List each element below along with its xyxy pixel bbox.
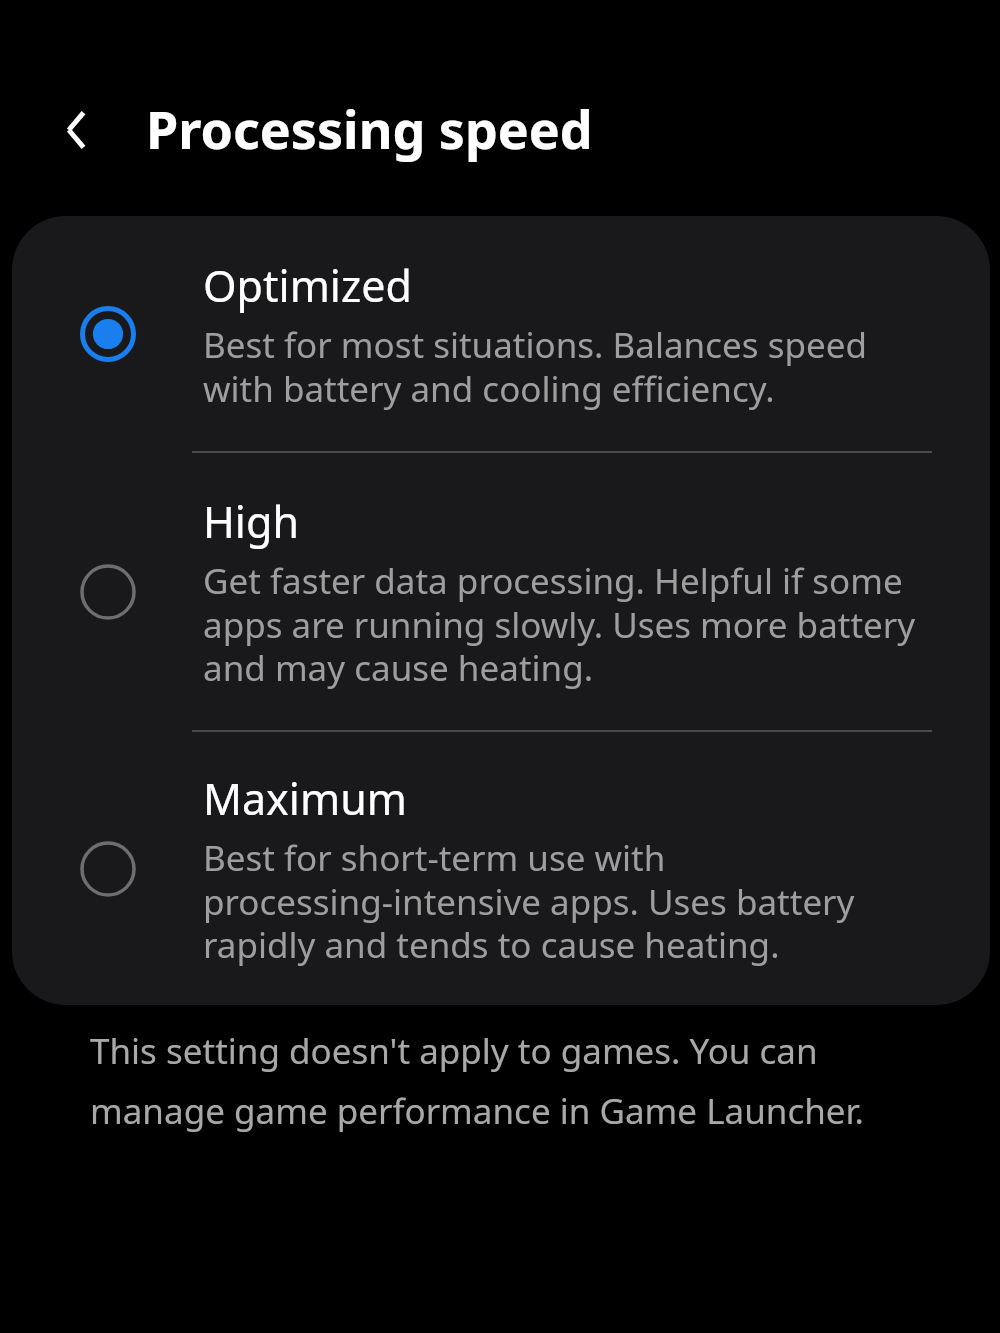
staticText: Processing speed — [146, 93, 593, 164]
button[interactable]: Back — [38, 90, 118, 170]
staticText: This setting doesn't apply to games. You… — [90, 1027, 864, 1134]
button[interactable]: Optimized — [12, 216, 990, 451]
staticText: High — [203, 492, 299, 551]
staticText: Get faster data processing. Helpful if s… — [203, 557, 916, 691]
staticText: Optimized — [203, 256, 412, 315]
button[interactable]: High — [12, 453, 990, 730]
staticText: Best for short-term use with processing-… — [203, 834, 855, 968]
staticText: Best for most situations. Balances speed… — [203, 321, 867, 412]
staticText: Maximum — [203, 769, 407, 828]
button[interactable]: Maximum — [12, 732, 990, 1005]
